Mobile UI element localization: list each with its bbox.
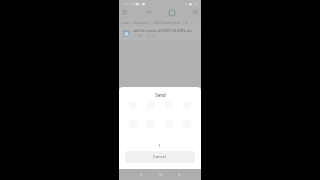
staticText: Cancel [153, 154, 167, 160]
staticText: Send [155, 92, 166, 98]
button[interactable]: Recents [174, 169, 184, 179]
staticText: 2.1 MB · 28 Jan [133, 34, 156, 38]
button[interactable]: Back [136, 169, 146, 179]
button[interactable]: View mode [145, 9, 154, 18]
staticText: root › Docmnts › 2020 Downloads › fi [122, 20, 188, 25]
button[interactable]: Select all [168, 9, 177, 18]
staticText: wk.file.name.20200128.MIN.zip [133, 28, 192, 33]
button[interactable]: Sort [121, 9, 130, 18]
button[interactable]: wk.file.name.20200128.MIN.zip [119, 26, 201, 40]
button[interactable]: Home [155, 169, 165, 179]
button[interactable]: More options [191, 9, 200, 18]
button[interactable]: Cancel [125, 151, 195, 163]
